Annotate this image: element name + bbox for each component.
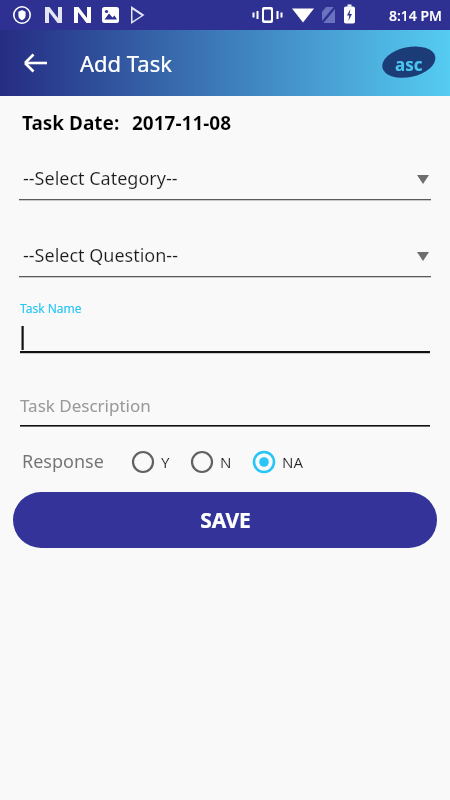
- button[interactable]: Y: [131, 450, 170, 474]
- staticText: Task Name: [20, 300, 82, 316]
- staticText: --Select Question--: [23, 243, 178, 268]
- button[interactable]: asc logo: [380, 41, 438, 85]
- staticText: Response: [22, 449, 104, 474]
- staticText: --Select Category--: [23, 166, 178, 191]
- button[interactable]: --Select Category--: [19, 166, 431, 201]
- staticText: 8:14 PM: [389, 6, 442, 25]
- staticText: 2017-11-08: [132, 110, 232, 136]
- button[interactable]: Task Description: [20, 394, 430, 427]
- button[interactable]: N: [190, 450, 232, 474]
- staticText: Y: [161, 452, 170, 472]
- staticText: Add Task: [80, 48, 172, 78]
- staticText: N: [220, 452, 232, 472]
- button[interactable]: SAVE: [13, 492, 437, 548]
- button[interactable]: Back: [14, 41, 58, 85]
- staticText: NA: [282, 452, 303, 472]
- staticText: Task Date:: [22, 110, 120, 136]
- staticText: SAVE: [200, 506, 251, 535]
- staticText: asc: [395, 53, 423, 76]
- staticText: Task Description: [20, 394, 151, 417]
- button[interactable]: Task Name: [20, 300, 430, 354]
- button[interactable]: --Select Question--: [19, 243, 431, 278]
- button[interactable]: NA: [252, 450, 303, 474]
